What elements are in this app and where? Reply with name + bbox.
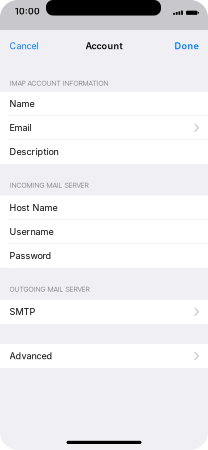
staticText: Username <box>9 226 53 237</box>
staticText: 10:00 <box>15 6 40 17</box>
button[interactable]: Advanced <box>0 344 208 368</box>
staticText: Advanced <box>9 350 52 361</box>
staticText: Name <box>9 98 34 109</box>
staticText: Cancel <box>9 41 38 51</box>
staticText: IMAP ACCOUNT INFORMATION <box>9 79 108 87</box>
staticText: Description <box>9 146 58 157</box>
button[interactable]: Email <box>0 116 208 140</box>
button[interactable]: SMTP <box>0 300 208 324</box>
staticText: Account <box>85 40 122 51</box>
staticText: OUTGOING MAIL SERVER <box>9 285 89 293</box>
button[interactable]: Done <box>174 40 198 51</box>
staticText: Password <box>9 250 51 261</box>
button[interactable]: Cancel <box>9 41 38 51</box>
staticText: Done <box>174 40 198 51</box>
staticText: Host Name <box>9 202 57 213</box>
staticText: INCOMING MAIL SERVER <box>9 181 88 189</box>
staticText: Email <box>9 122 31 133</box>
staticText: SMTP <box>9 306 35 317</box>
